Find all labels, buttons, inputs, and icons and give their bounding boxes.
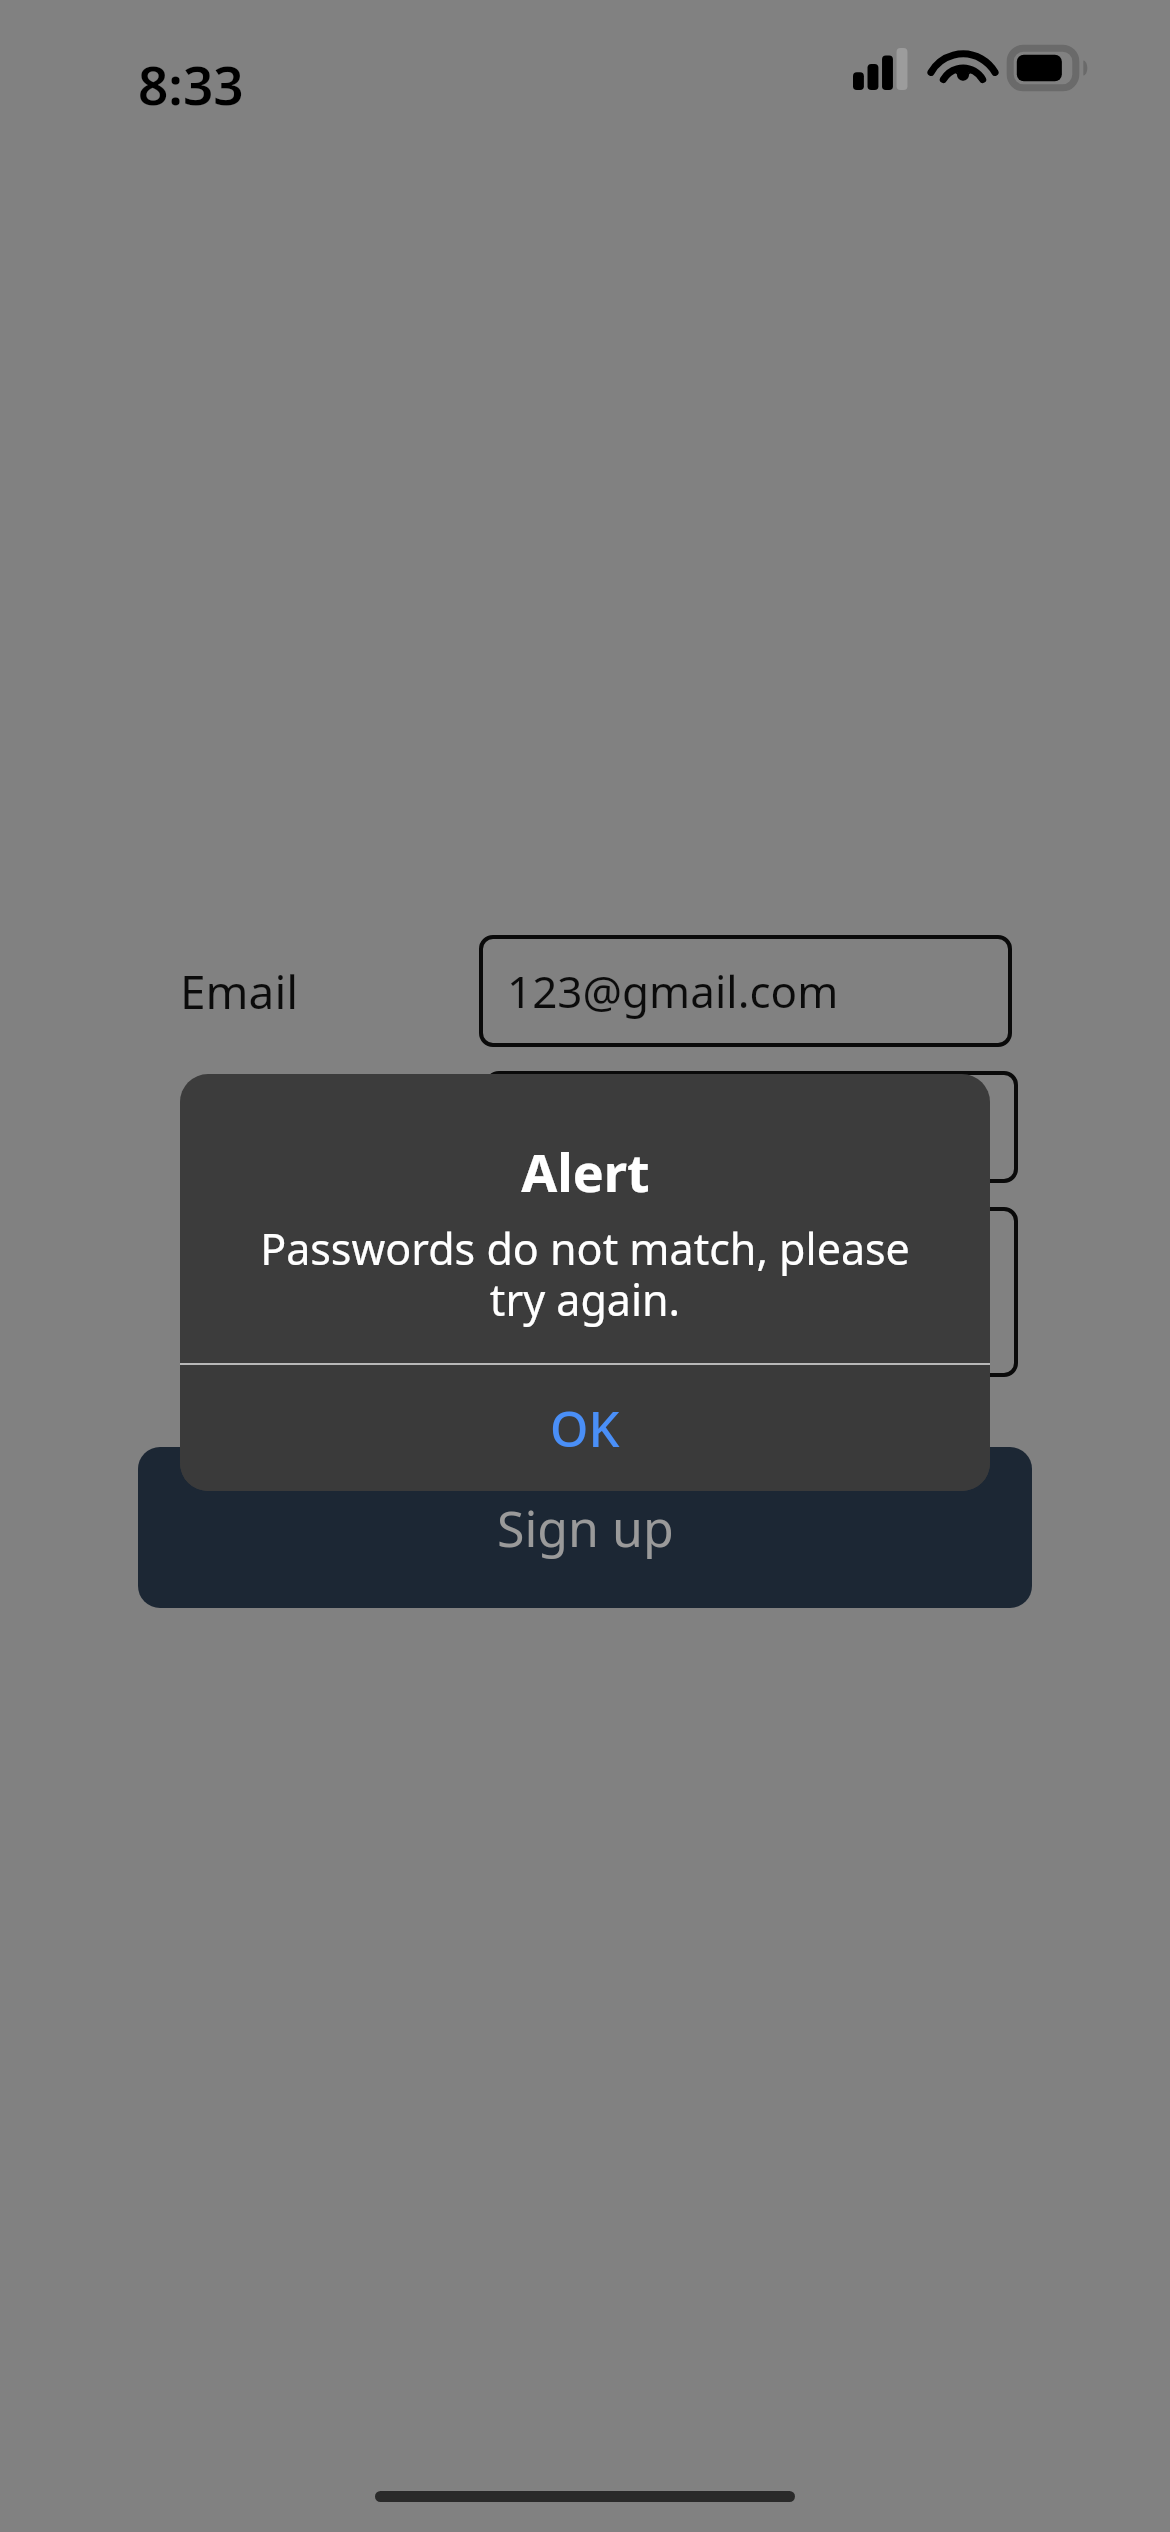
button[interactable] [485, 1071, 1018, 1183]
button[interactable]: 123@gmail.com [479, 935, 1012, 1047]
staticText: Alert [521, 1136, 650, 1207]
staticText: 123@gmail.com [507, 961, 839, 1021]
staticText: Email [180, 960, 299, 1023]
staticText: Sign up [497, 1494, 674, 1562]
staticText: OK [550, 1395, 620, 1462]
other: Wi-Fi [935, 48, 991, 90]
staticText: Passwords do not match, please try again… [260, 1219, 910, 1329]
staticText: 8:33 [138, 48, 244, 120]
button[interactable]: Sign up [138, 1447, 1032, 1608]
other: Cellular signal [853, 48, 919, 90]
button[interactable] [485, 1207, 1018, 1377]
button[interactable]: OK [180, 1365, 990, 1491]
other: Battery [1008, 46, 1088, 90]
